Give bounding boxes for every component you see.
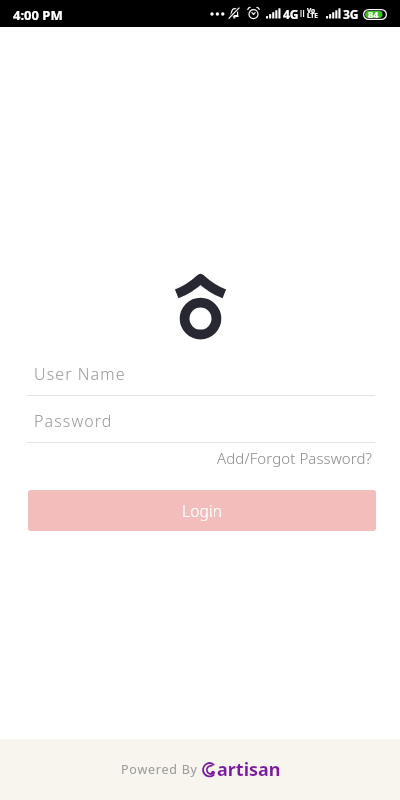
staticText: Powered By — [121, 761, 198, 778]
staticText: 3G — [343, 6, 359, 22]
button[interactable]: Login — [28, 490, 376, 531]
button[interactable]: Add/Forgot Password? — [215, 445, 375, 471]
staticText: 4G — [283, 6, 299, 22]
staticText: LTE — [307, 11, 318, 20]
staticText: User Name — [34, 363, 126, 385]
staticText: Vo — [307, 6, 316, 15]
button[interactable]: User Name — [0, 356, 400, 396]
button[interactable]: Password — [0, 403, 400, 443]
staticText: Login — [182, 500, 223, 521]
staticText: Password — [34, 410, 113, 432]
staticText: 4:00 PM — [13, 6, 63, 24]
staticText: 84 — [368, 8, 379, 20]
staticText: Add/Forgot Password? — [217, 448, 373, 468]
staticText: artisan — [217, 757, 281, 782]
other: App logo — [170, 270, 230, 344]
